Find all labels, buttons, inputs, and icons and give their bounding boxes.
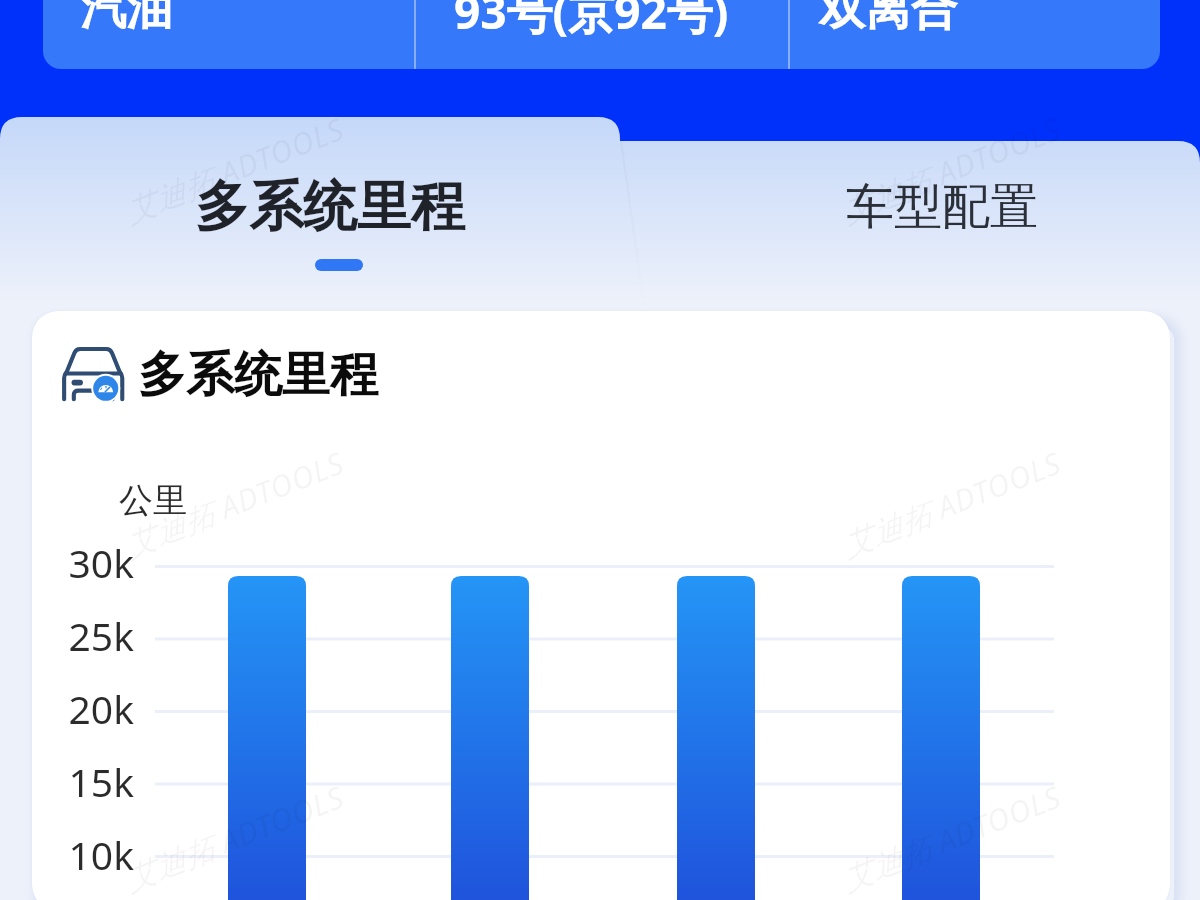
staticText: 公里 — [119, 479, 187, 522]
staticText: 多系统里程 — [195, 173, 465, 241]
button[interactable]: 汽油 — [43, 0, 1160, 69]
button[interactable]: 汽油 — [43, 0, 414, 69]
button[interactable]: 车型配置 — [620, 117, 1200, 292]
staticText: 多系统里程 — [138, 345, 378, 405]
staticText: 汽油 — [80, 0, 172, 38]
staticText: 艾迪拓 ADTOOLS — [119, 776, 350, 899]
staticText: 20k — [34, 682, 134, 735]
button[interactable]: Multi-system mileage — [32, 311, 1170, 900]
staticText: 25k — [34, 609, 134, 662]
other: Multi-system mileage — [59, 345, 124, 402]
staticText: 93号(京92号) — [454, 0, 729, 43]
staticText: 双离合 — [819, 0, 957, 38]
staticText: 车型配置 — [846, 177, 1038, 237]
button[interactable]: 93号(京92号) — [416, 0, 788, 69]
button[interactable]: 多系统里程 — [0, 117, 620, 292]
staticText: 10k — [34, 828, 134, 881]
staticText: 30k — [34, 536, 134, 589]
staticText: 15k — [34, 755, 134, 808]
staticText: 艾迪拓 ADTOOLS — [119, 108, 350, 231]
staticText: 艾迪拓 ADTOOLS — [836, 108, 1067, 231]
button[interactable]: 双离合 — [790, 0, 1160, 69]
staticText: 艾迪拓 ADTOOLS — [119, 442, 350, 565]
staticText: 艾迪拓 ADTOOLS — [836, 776, 1067, 899]
